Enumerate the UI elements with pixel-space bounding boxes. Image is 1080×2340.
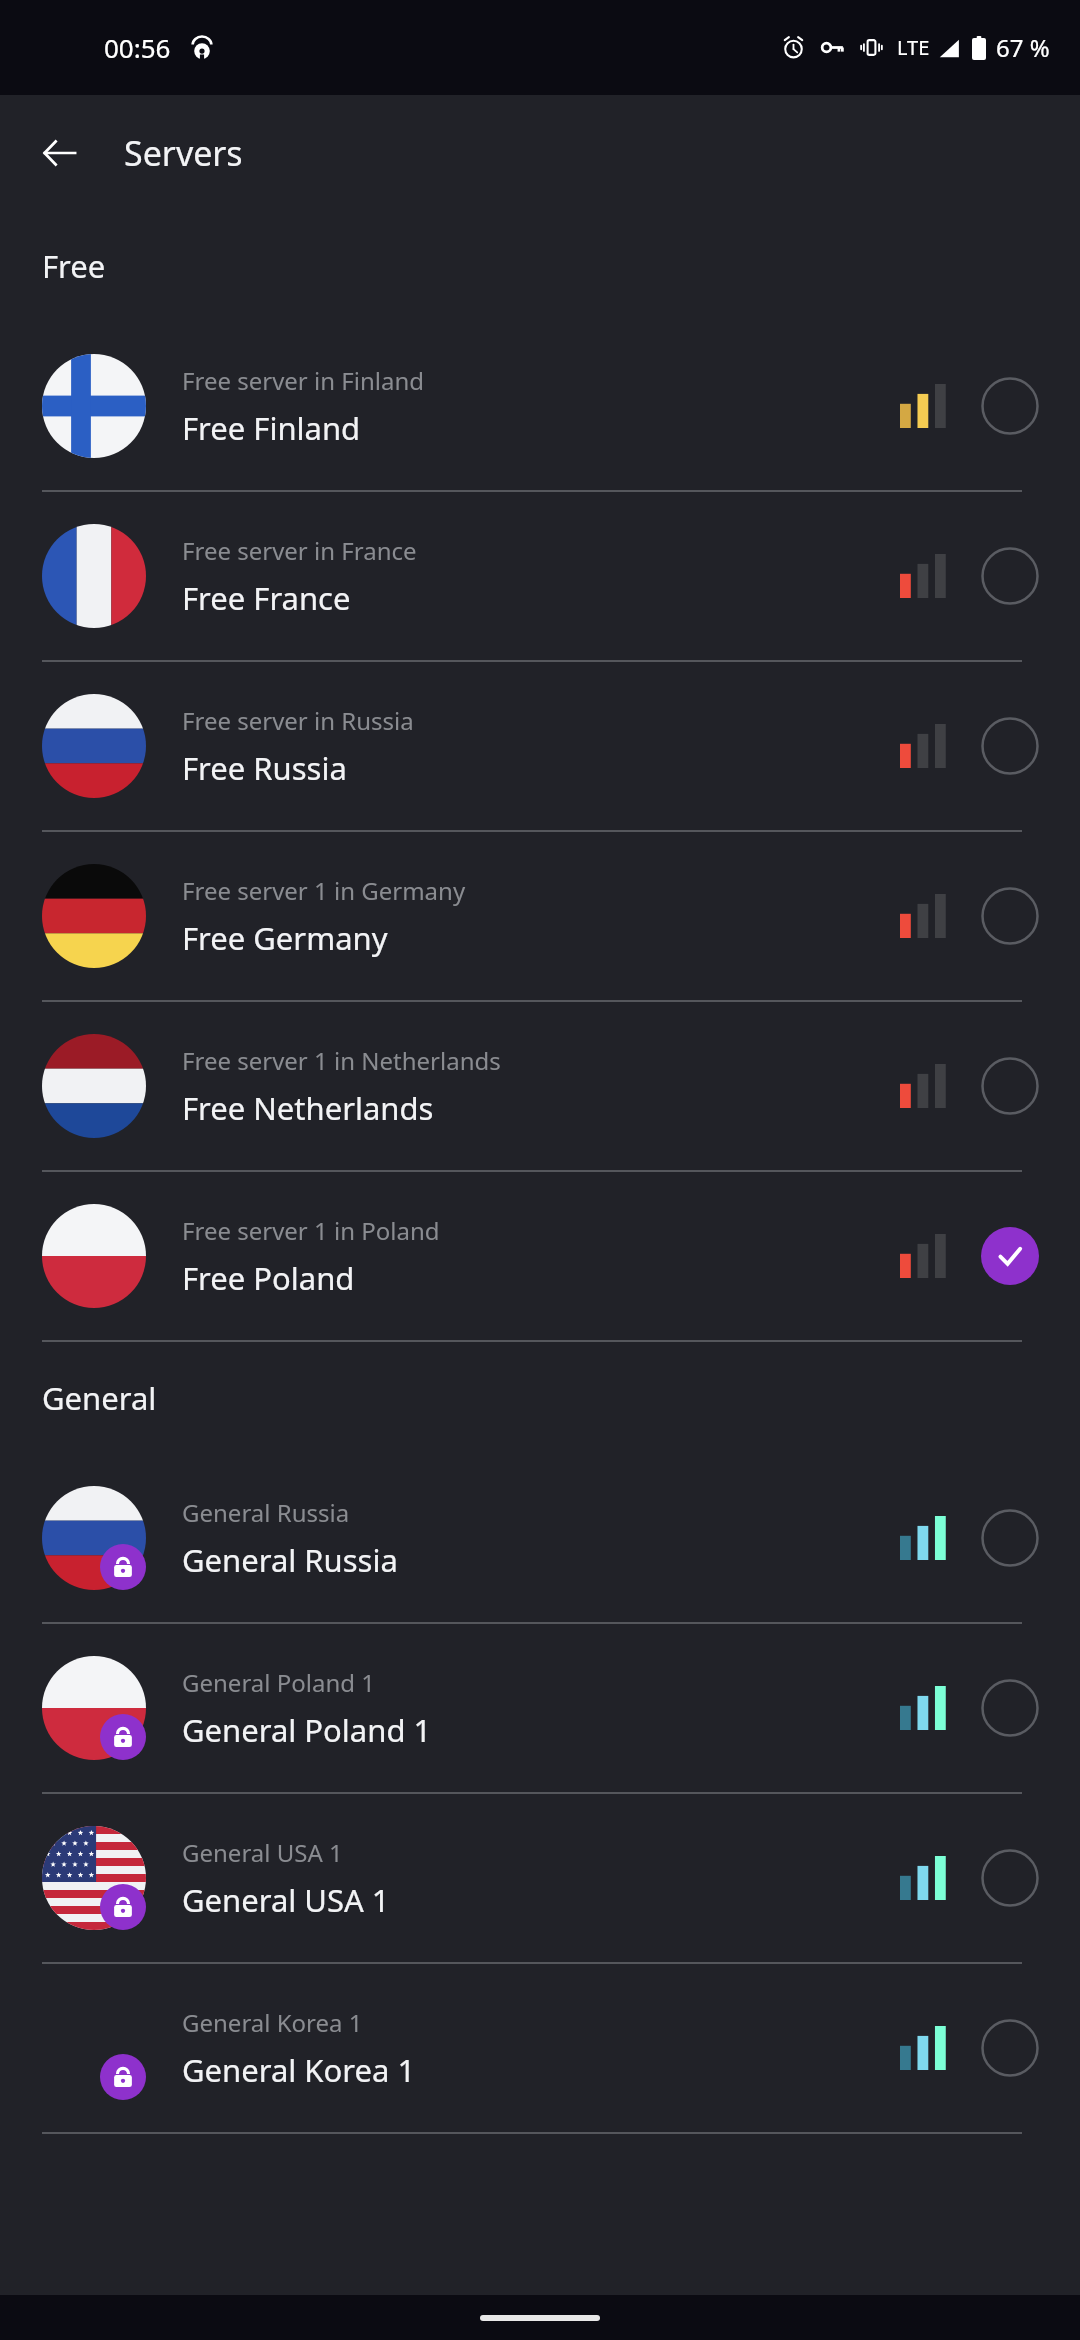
staticText: General Poland 1 [182, 1709, 432, 1751]
staticText: Free server 1 in Netherlands [182, 1044, 501, 1077]
button[interactable]: Free server 1 in Germany [0, 832, 1080, 1002]
staticText: General Poland 1 [182, 1666, 375, 1699]
button[interactable]: Free server 1 in Netherlands [0, 1002, 1080, 1172]
staticText: General [42, 1377, 157, 1419]
staticText: 00:56 [104, 30, 171, 65]
staticText: Free Germany [182, 917, 388, 959]
staticText: General Russia [182, 1496, 350, 1529]
button[interactable]: Free server in Russia [0, 662, 1080, 832]
staticText: Free server 1 in Poland [182, 1214, 440, 1247]
button[interactable]: General USA 1 [0, 1794, 1080, 1964]
staticText: Free [42, 245, 106, 287]
button[interactable]: Back [28, 121, 92, 185]
staticText: General Korea 1 [182, 2006, 363, 2039]
staticText: General Russia [182, 1539, 398, 1581]
button[interactable]: Free server in Finland [0, 322, 1080, 492]
staticText: Free server in France [182, 534, 417, 567]
button[interactable]: Free server in France [0, 492, 1080, 662]
staticText: Free France [182, 577, 351, 619]
staticText: Free server in Finland [182, 364, 425, 397]
staticText: Free Russia [182, 747, 347, 789]
staticText: Free Netherlands [182, 1087, 434, 1129]
button[interactable]: General Poland 1 [0, 1624, 1080, 1794]
button[interactable]: Free server 1 in Poland [0, 1172, 1080, 1342]
staticText: 67 % [996, 31, 1050, 64]
staticText: LTE [897, 34, 930, 61]
button[interactable]: General Korea 1 [0, 1964, 1080, 2134]
staticText: Servers [124, 130, 243, 176]
staticText: Free server 1 in Germany [182, 874, 466, 907]
staticText: General USA 1 [182, 1879, 390, 1921]
staticText: Free server in Russia [182, 704, 414, 737]
button[interactable]: General Russia [0, 1454, 1080, 1624]
staticText: Free Poland [182, 1257, 355, 1299]
staticText: General Korea 1 [182, 2049, 416, 2091]
staticText: General USA 1 [182, 1836, 343, 1869]
staticText: Free Finland [182, 407, 361, 449]
